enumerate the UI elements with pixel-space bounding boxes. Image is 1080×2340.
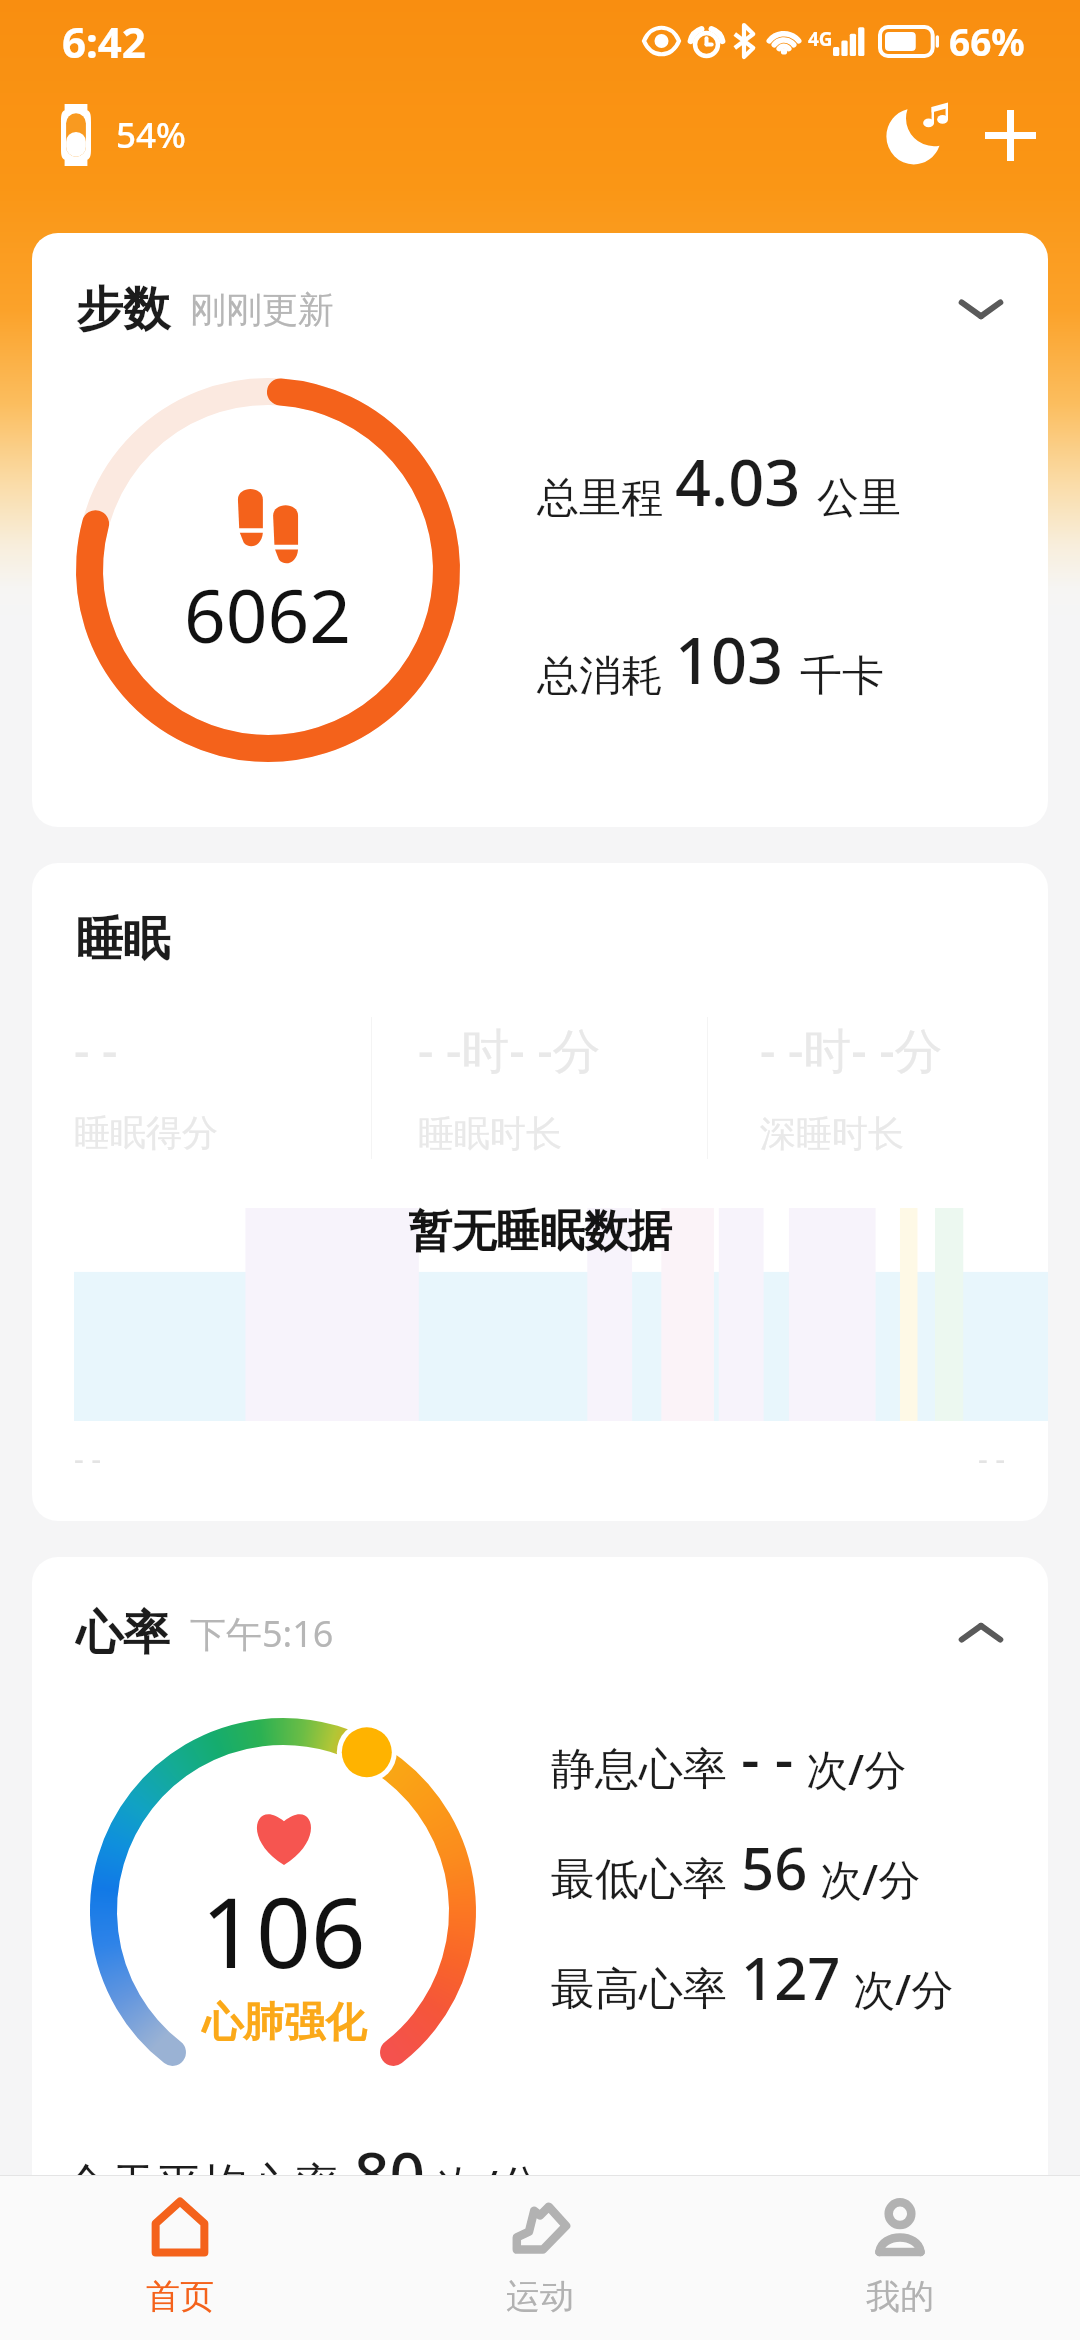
staticText: 次/分 xyxy=(437,2155,542,2215)
staticText: 4G xyxy=(808,26,833,52)
staticText: 6062 xyxy=(184,565,352,664)
staticText: - - xyxy=(74,1017,118,1082)
staticText: 次/分 xyxy=(853,1960,954,2017)
staticText: - -时- -分 xyxy=(760,1017,943,1083)
button[interactable]: 睡眠 xyxy=(32,863,1048,1015)
staticText: - - xyxy=(978,1438,1006,1479)
button[interactable]: 运动 xyxy=(360,2176,720,2340)
button[interactable]: Add xyxy=(965,90,1055,180)
staticText: 千卡 xyxy=(800,650,884,703)
button[interactable]: 我的 xyxy=(720,2176,1080,2340)
staticText: 我的 xyxy=(866,2275,934,2318)
button[interactable]: 步数 xyxy=(32,233,1048,385)
other: Collapse xyxy=(958,1618,1004,1648)
staticText: 最低心率 xyxy=(551,1852,727,1907)
staticText: 首页 xyxy=(146,2275,214,2318)
button[interactable]: 睡眠 xyxy=(32,863,1048,1521)
button[interactable]: 心率 xyxy=(32,1557,1048,2340)
staticText: 总消耗 xyxy=(537,650,663,703)
staticText: 心率 xyxy=(76,1604,170,1663)
staticText: 步数 xyxy=(76,280,170,339)
staticText: 54% xyxy=(116,111,186,159)
staticText: 刚刚更新 xyxy=(190,287,334,332)
staticText: 运动 xyxy=(506,2275,574,2318)
staticText: 暂无睡眠数据 xyxy=(408,1204,672,1259)
staticText: 次/分 xyxy=(806,1740,907,1797)
button[interactable]: 首页 xyxy=(0,2176,360,2340)
button[interactable]: Sleep music xyxy=(875,90,965,180)
staticText: 4.03 xyxy=(675,439,801,525)
staticText: 睡眠得分 xyxy=(74,1110,218,1155)
staticText: 下午5:16 xyxy=(190,1609,334,1658)
staticText: 全天平均心率 xyxy=(64,2157,340,2215)
staticText: 静息心率 xyxy=(551,1742,727,1797)
staticText: 80 xyxy=(354,2131,425,2215)
staticText: 106 xyxy=(201,1865,366,1996)
staticText: 总里程 xyxy=(537,472,663,525)
staticText: 睡眠时长 xyxy=(418,1111,562,1156)
staticText: 127 xyxy=(741,1938,841,2017)
button[interactable]: 心率 xyxy=(32,1557,1048,1709)
button[interactable]: Band battery 54% xyxy=(61,104,186,166)
staticText: 最高心率 xyxy=(551,1962,727,2017)
staticText: 56 xyxy=(741,1828,808,1907)
staticText: 6:42 xyxy=(62,13,146,70)
staticText: 公里 xyxy=(817,472,901,525)
other: Expand xyxy=(958,294,1004,324)
staticText: 睡眠 xyxy=(76,910,170,969)
staticText: - - xyxy=(741,1718,794,1797)
staticText: - - xyxy=(74,1438,102,1479)
staticText: 深睡时长 xyxy=(760,1111,904,1156)
staticText: 103 xyxy=(675,617,784,703)
staticText: 次/分 xyxy=(820,1850,921,1907)
staticText: 心肺强化 xyxy=(202,1997,366,2049)
button[interactable]: 步数 xyxy=(32,233,1048,827)
staticText: 66% xyxy=(949,16,1025,66)
staticText: - -时- -分 xyxy=(418,1017,601,1083)
